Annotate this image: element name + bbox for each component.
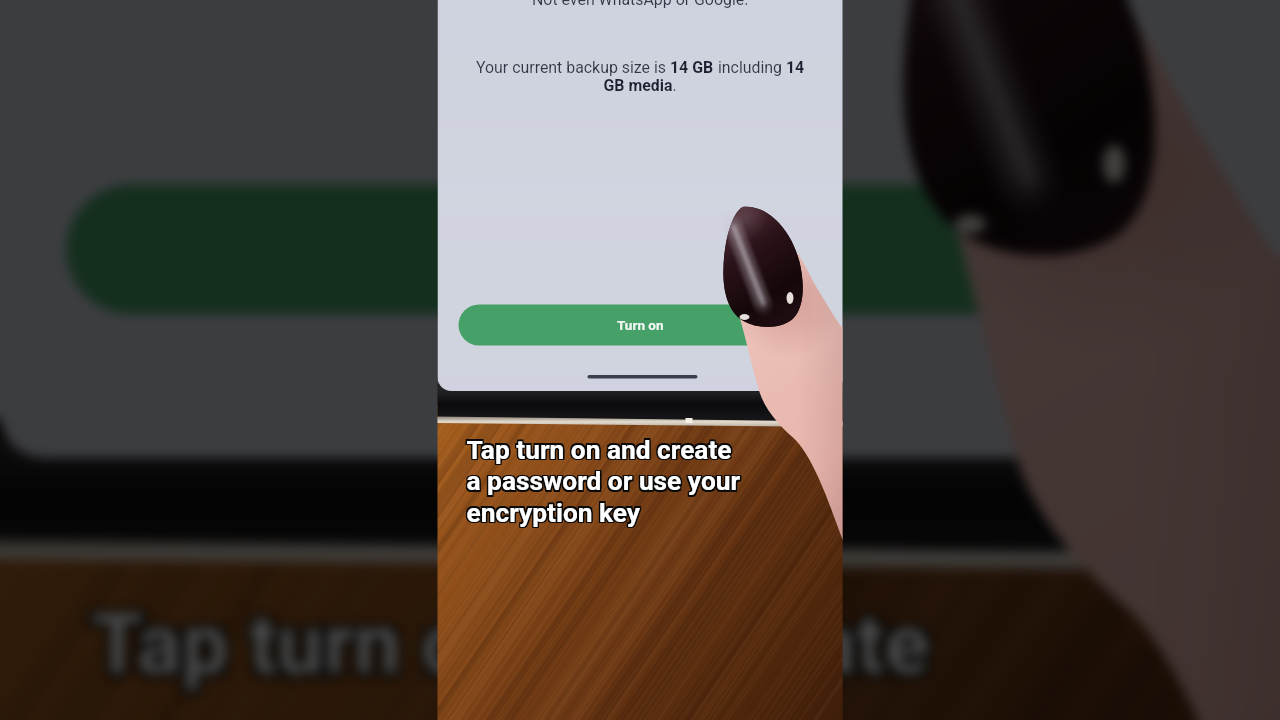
button[interactable]: Short video: WhatsApp end-to-end encrypt… [0, 0, 1280, 720]
